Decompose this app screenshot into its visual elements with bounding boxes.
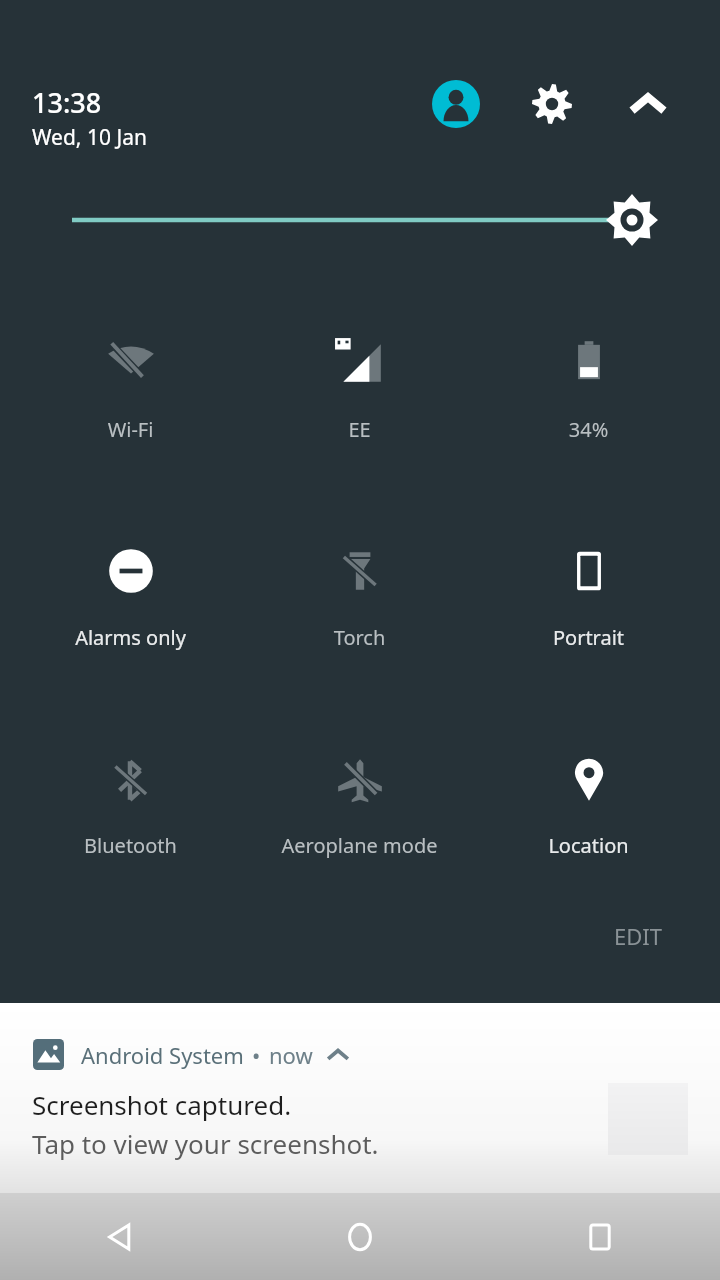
button[interactable]: Do not disturb <box>16 515 245 659</box>
button[interactable]: Brightness <box>0 182 720 258</box>
staticText: Wi-Fi <box>16 416 245 443</box>
button[interactable]: Home <box>240 1193 480 1280</box>
staticText: now <box>269 1040 313 1070</box>
staticText: Wed, 10 Jan <box>32 123 147 152</box>
button[interactable]: Android System <box>0 1003 720 1193</box>
button[interactable]: Torch <box>245 515 474 659</box>
staticText: EDIT <box>614 921 662 951</box>
staticText: Tap to view your screenshot. <box>32 1126 379 1161</box>
staticText: Aeroplane mode <box>245 832 474 859</box>
staticText: 13:38 <box>32 84 102 121</box>
button[interactable]: EDIT <box>580 906 696 966</box>
button[interactable]: Settings <box>524 76 580 132</box>
staticText: Torch <box>245 624 474 651</box>
staticText: Portrait <box>474 624 703 651</box>
button[interactable]: Collapse <box>620 76 676 132</box>
button[interactable]: Location <box>474 724 703 867</box>
button[interactable]: Bluetooth <box>16 724 245 867</box>
button[interactable]: Aeroplane mode <box>245 724 474 867</box>
staticText: Screenshot captured. <box>32 1087 292 1122</box>
staticText: Bluetooth <box>16 832 245 859</box>
button[interactable]: Mobile data <box>245 306 474 451</box>
button[interactable]: Expand notification <box>325 1042 351 1068</box>
button[interactable]: Battery <box>474 306 703 451</box>
button[interactable]: Wi-Fi <box>16 306 245 451</box>
button[interactable]: Recents <box>480 1193 720 1280</box>
staticText: 34% <box>474 416 703 443</box>
staticText: Alarms only <box>16 624 245 651</box>
staticText: EE <box>245 416 474 443</box>
staticText: Location <box>474 832 703 859</box>
button[interactable]: Rotation <box>474 515 703 659</box>
staticText: • <box>252 1040 261 1070</box>
button[interactable]: Back <box>0 1193 240 1280</box>
button[interactable]: User profile <box>428 76 484 132</box>
staticText: Android System <box>81 1040 244 1070</box>
